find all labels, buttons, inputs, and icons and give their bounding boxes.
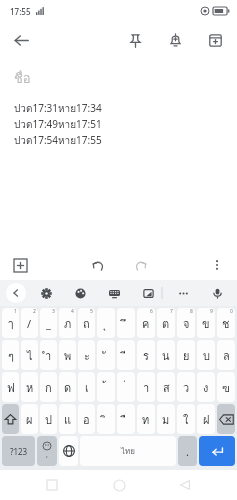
button[interactable]: เ — [78, 372, 95, 402]
staticText: ฃ — [222, 379, 230, 396]
button[interactable]: Shift — [2, 404, 19, 434]
button[interactable]: บ — [197, 340, 215, 370]
button[interactable]: ด — [59, 372, 76, 402]
button[interactable]: _ — [40, 308, 57, 338]
button[interactable]: ล — [217, 340, 235, 370]
button[interactable]: ไทย — [80, 436, 176, 466]
staticText: ช — [222, 315, 230, 332]
button[interactable]: Redo — [127, 252, 153, 278]
button[interactable]: Resize keyboard — [138, 283, 158, 303]
button[interactable]: ึ — [117, 308, 135, 338]
button[interactable]: Home — [104, 470, 134, 500]
button[interactable]: More options — [205, 253, 229, 277]
button[interactable]: ร — [137, 340, 155, 370]
button[interactable]: ภ — [59, 308, 76, 338]
staticText: ชื่อ — [14, 68, 31, 89]
staticText: ำ — [45, 347, 52, 364]
button[interactable]: Back — [6, 25, 36, 55]
button[interactable]: ก — [40, 372, 57, 402]
button[interactable]: ะ — [78, 340, 95, 370]
button[interactable]: Add — [8, 253, 32, 277]
button[interactable]: ื — [117, 404, 135, 434]
staticText: เ — [85, 379, 89, 396]
staticText: ท — [142, 411, 150, 428]
button[interactable]: ป — [40, 404, 57, 434]
button[interactable]: Themes — [70, 283, 90, 303]
button[interactable]: น — [157, 340, 175, 370]
staticText: ฝ — [203, 411, 210, 428]
staticText: พ — [64, 347, 72, 364]
button[interactable]: จ — [177, 308, 195, 338]
staticText: ห — [26, 379, 34, 396]
button[interactable]: ิ — [97, 404, 115, 434]
staticText: ฟ — [7, 379, 15, 396]
button[interactable]: า — [137, 372, 155, 402]
button[interactable]: Undo — [85, 252, 111, 278]
button[interactable]: ำ — [40, 340, 57, 370]
button[interactable]: ?123 — [2, 436, 35, 466]
button[interactable]: ค — [137, 308, 155, 338]
button[interactable]: ฃ — [217, 372, 235, 402]
button[interactable]: Settings — [36, 283, 56, 303]
button[interactable]: ั — [97, 340, 115, 370]
button[interactable]: Back — [170, 470, 200, 500]
button[interactable]: ต — [157, 308, 175, 338]
staticText: อ — [83, 411, 90, 428]
button[interactable]: แ — [59, 404, 76, 434]
button[interactable]: Voice input — [207, 283, 227, 303]
staticText: ไทย — [121, 445, 135, 458]
button[interactable]: ช — [217, 308, 235, 338]
button[interactable]: ี — [117, 340, 135, 370]
button[interactable]: ส — [157, 372, 175, 402]
button[interactable]: / — [21, 308, 38, 338]
button[interactable]: ถ — [78, 308, 95, 338]
button[interactable]: ม — [157, 404, 175, 434]
button[interactable]: . — [178, 436, 197, 466]
staticText: 7 — [170, 308, 173, 315]
button[interactable]: Change language — [59, 436, 78, 466]
button[interactable]: ฟ — [2, 372, 19, 402]
button[interactable]: More — [173, 283, 193, 303]
button[interactable]: ใ — [177, 404, 195, 434]
button[interactable]: ท — [137, 404, 155, 434]
staticText: ปวด17:31หาย17:34 — [14, 101, 102, 117]
staticText: น — [162, 347, 170, 364]
button[interactable]: ้ — [97, 372, 115, 402]
button[interactable]: Emoji — [37, 436, 57, 466]
staticText: 6 — [150, 308, 153, 315]
staticText: ย — [183, 347, 190, 364]
staticText: _ — [46, 316, 51, 331]
button[interactable]: ุ — [97, 308, 115, 338]
staticText: ส — [163, 379, 170, 396]
staticText: ง — [203, 379, 209, 396]
button[interactable]: Archive — [201, 26, 229, 54]
button[interactable]: ฝ — [197, 404, 215, 434]
staticText: ?123 — [10, 446, 28, 457]
button[interactable]: ย — [177, 340, 195, 370]
button[interactable]: ว — [177, 372, 195, 402]
button[interactable]: Collapse toolbar — [6, 283, 26, 303]
button[interactable]: พ — [59, 340, 76, 370]
staticText: , — [46, 450, 48, 460]
button[interactable]: Enter — [199, 436, 235, 466]
staticText: า — [143, 379, 150, 396]
button[interactable]: Pin — [121, 26, 149, 54]
staticText: ว — [183, 379, 190, 396]
staticText: ผ — [26, 411, 33, 428]
staticText: 4 — [71, 308, 74, 315]
button[interactable]: ไ — [21, 340, 38, 370]
button[interactable]: ห — [21, 372, 38, 402]
button[interactable]: ่ — [117, 372, 135, 402]
button[interactable]: ผ — [21, 404, 38, 434]
button[interactable]: อ — [78, 404, 95, 434]
button[interactable]: ๅ — [2, 308, 19, 338]
button[interactable]: Keyboard layout — [104, 283, 124, 303]
button[interactable]: ๆ — [2, 340, 19, 370]
button[interactable]: ข — [197, 308, 215, 338]
button[interactable]: Recents — [37, 470, 67, 500]
button[interactable]: Backspace — [217, 404, 235, 434]
button[interactable]: ง — [197, 372, 215, 402]
staticText: ใ — [183, 411, 189, 428]
button[interactable]: Add reminder — [161, 26, 189, 54]
staticText: ป — [45, 411, 52, 428]
